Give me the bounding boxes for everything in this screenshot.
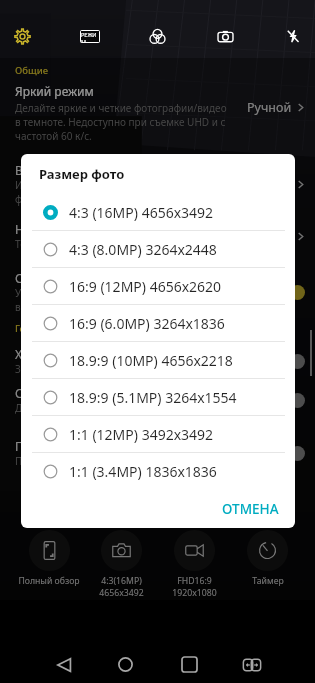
staticText: Для лучшей композиции bbox=[15, 401, 138, 415]
staticText: Водяной знак bbox=[15, 162, 96, 178]
button[interactable]: Home bbox=[110, 649, 141, 680]
button[interactable]: FHD16:9 bbox=[158, 525, 231, 599]
button[interactable]: Размер фото bbox=[21, 154, 295, 528]
staticText: Геотеги bbox=[15, 322, 51, 335]
staticText: РЕЖИМ bbox=[81, 31, 99, 42]
staticText: Подсказки bbox=[15, 454, 67, 468]
staticText: Сетка bbox=[15, 385, 48, 401]
staticText: Использовать водяной знак на bbox=[15, 178, 166, 192]
staticText: Хранить геоданные bbox=[15, 346, 130, 362]
staticText: 4656x3492 bbox=[99, 587, 144, 599]
button[interactable]: ОТМЕНА bbox=[206, 492, 295, 526]
button[interactable]: Switch camera bbox=[203, 14, 247, 58]
button[interactable]: Flash off bbox=[271, 14, 315, 58]
staticText: Размер фото bbox=[39, 165, 125, 183]
staticText: Ручной bbox=[247, 99, 292, 116]
button[interactable]: 16:9 (12MP) 4656x2620 bbox=[21, 268, 295, 305]
button[interactable]: 18.9:9 (5.1MP) 3264x1554 bbox=[21, 379, 295, 416]
staticText: Настройки захвата bbox=[15, 221, 125, 237]
staticText: частотой 60 к/с. bbox=[15, 129, 92, 143]
button[interactable]: Back bbox=[48, 649, 79, 680]
staticText: 1920x1080 bbox=[172, 587, 217, 599]
button[interactable]: 1:1 (3.4MP) 1836x1836 bbox=[21, 453, 295, 490]
staticText: Стабилизация видео bbox=[15, 270, 137, 286]
staticText: 4:3(16MP) bbox=[101, 575, 142, 587]
staticText: Делайте яркие и четкие фотографии/видео bbox=[15, 101, 227, 115]
staticText: 1:1 (3.4MP) 1836x1836 bbox=[69, 462, 217, 481]
staticText: Яркий режим bbox=[15, 83, 94, 99]
button[interactable]: Ручной bbox=[247, 99, 305, 116]
button[interactable]: Settings bbox=[0, 14, 44, 58]
staticText: 4:3 (8.0MP) 3264x2448 bbox=[69, 240, 217, 259]
staticText: 1:1 (12MP) 3492x3492 bbox=[69, 425, 214, 444]
staticText: Общие bbox=[15, 64, 49, 77]
button[interactable]: 1:1 (12MP) 3492x3492 bbox=[21, 416, 295, 453]
staticText: Таймер bbox=[252, 575, 284, 587]
staticText: Записывать местоположение в bbox=[15, 362, 167, 376]
staticText: 18.9:9 (10MP) 4656x2218 bbox=[69, 351, 233, 370]
button[interactable]: Split screen bbox=[236, 649, 267, 680]
staticText: 18.9:9 (5.1MP) 3264x1554 bbox=[69, 388, 237, 407]
button[interactable]: 4:3 (8.0MP) 3264x2448 bbox=[21, 231, 295, 268]
staticText: FHD16:9 bbox=[177, 575, 212, 587]
staticText: Полный обзор bbox=[18, 575, 80, 587]
staticText: в темноте. Недоступно при съемке UHD и с bbox=[15, 115, 226, 129]
staticText: 16:9 (6.0MP) 3264x1836 bbox=[69, 314, 225, 333]
button[interactable]: Recents bbox=[174, 649, 205, 680]
button[interactable]: 18.9:9 (10MP) 4656x2218 bbox=[21, 342, 295, 379]
button[interactable]: 4:3 (16MP) 4656x3492 bbox=[21, 194, 295, 231]
button[interactable]: Shooting mode bbox=[68, 14, 112, 58]
staticText: видео bbox=[15, 300, 45, 314]
staticText: 4:3 (16MP) 4656x3492 bbox=[69, 203, 214, 222]
staticText: Только изображение bbox=[15, 237, 117, 251]
staticText: 16:9 (12MP) 4656x2620 bbox=[69, 277, 222, 296]
button[interactable]: Filters bbox=[135, 14, 179, 58]
button[interactable]: Таймер bbox=[231, 525, 304, 587]
button[interactable]: 16:9 (6.0MP) 3264x1836 bbox=[21, 305, 295, 342]
button[interactable]: 4:3(16MP) bbox=[85, 525, 158, 599]
button[interactable]: Полный обзор bbox=[13, 525, 85, 587]
staticText: ОТМЕНА bbox=[222, 500, 279, 518]
staticText: Уменьшение дрожания при записи bbox=[15, 286, 188, 300]
staticText: фотографиях bbox=[15, 192, 80, 206]
staticText: Помощник съемки bbox=[15, 438, 126, 454]
